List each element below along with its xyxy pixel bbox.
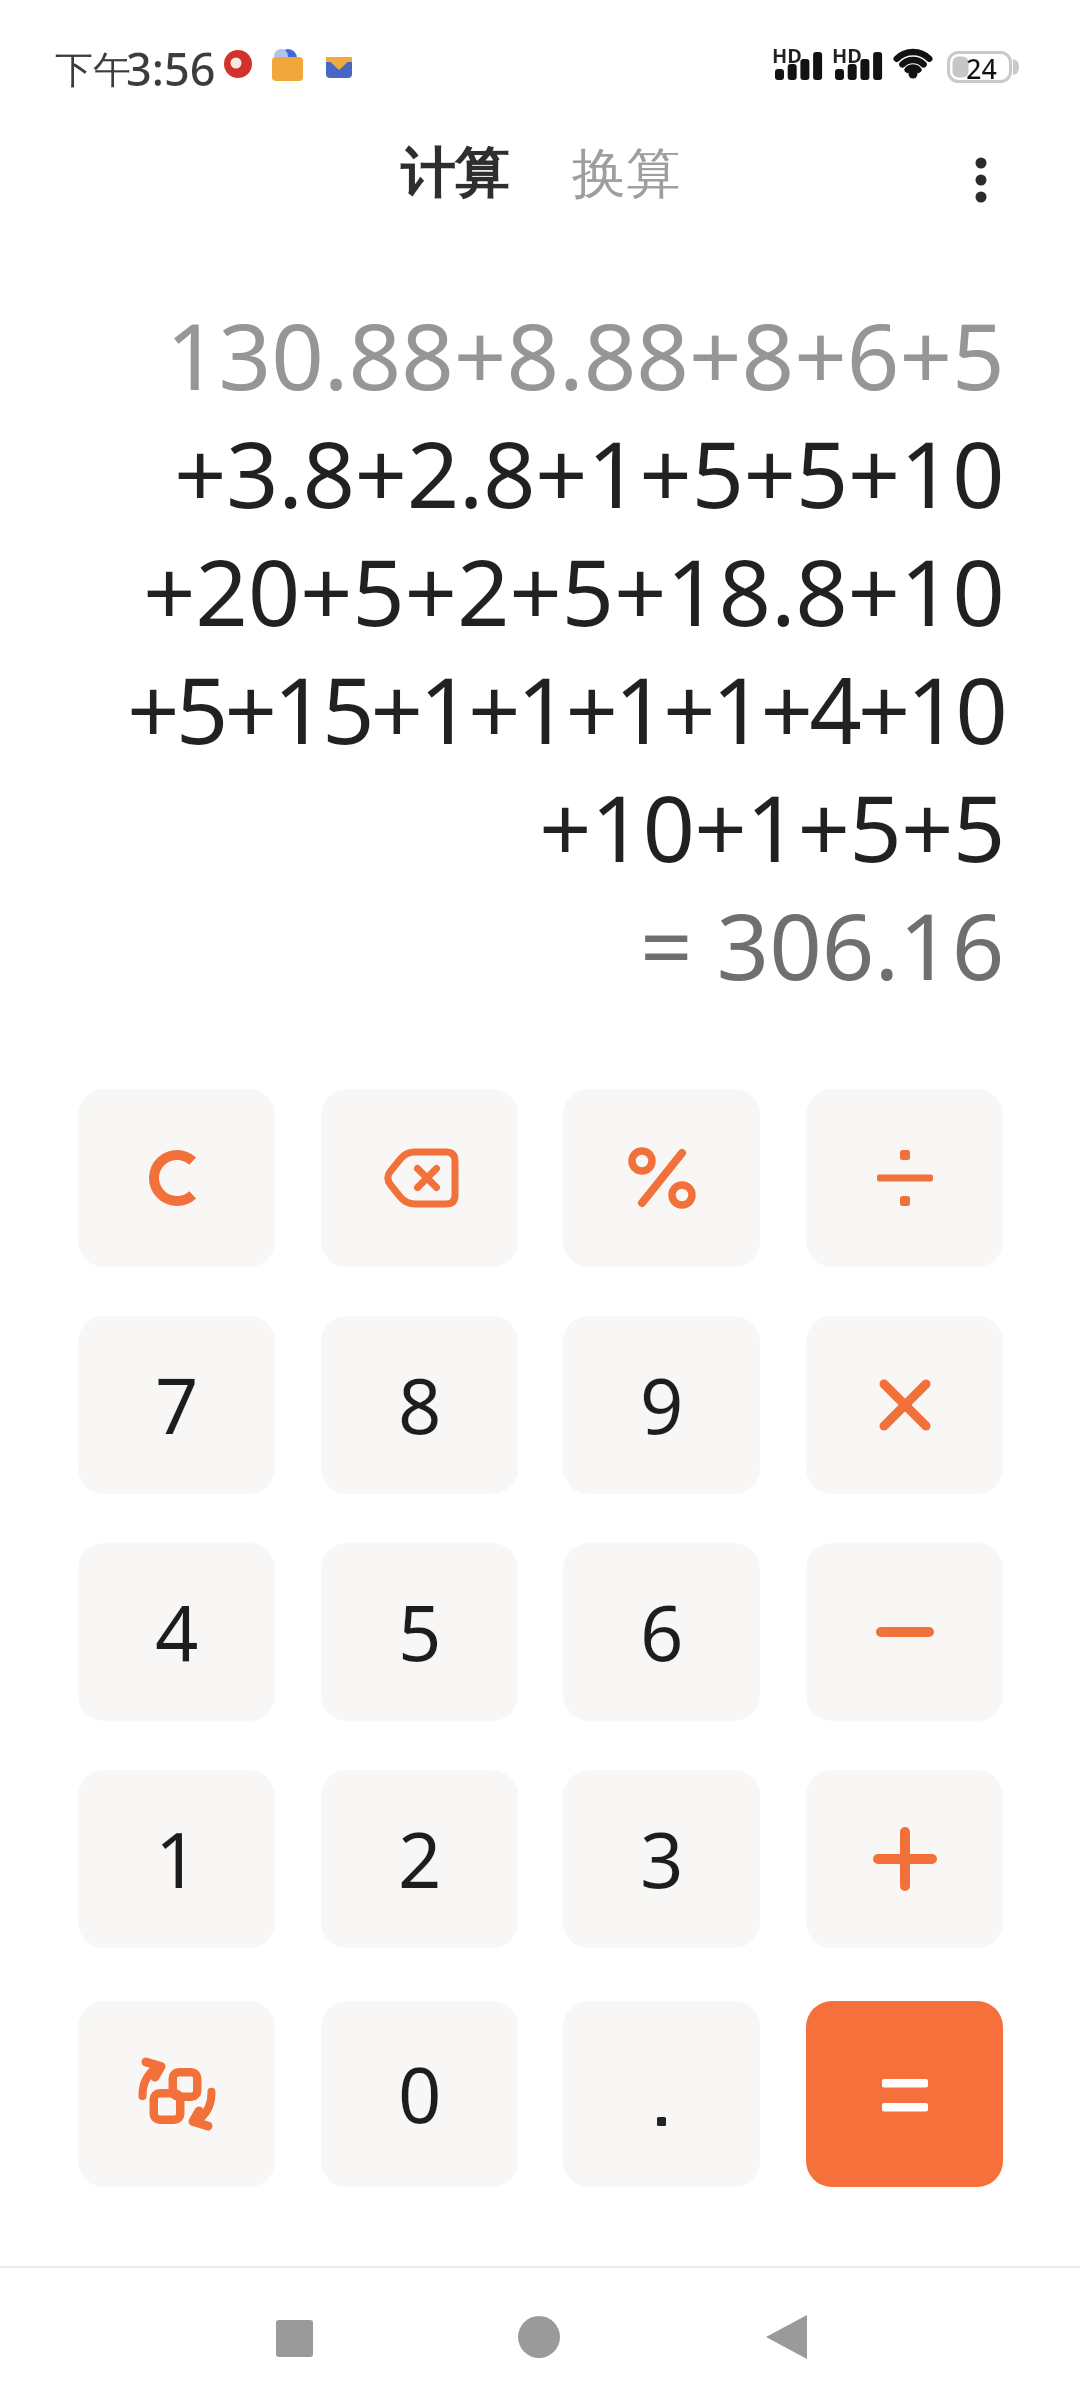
button[interactable] bbox=[563, 1089, 760, 1267]
staticText: 9 bbox=[640, 1353, 684, 1457]
staticText: HD bbox=[832, 42, 862, 69]
staticText: = 306.16 bbox=[640, 882, 1005, 1007]
button[interactable] bbox=[955, 140, 1007, 220]
staticText: 2 bbox=[398, 1807, 442, 1911]
staticText: 换算 bbox=[572, 140, 680, 208]
button[interactable]: 2 bbox=[321, 1770, 518, 1948]
staticText: +20+5+2+5+18.8+10 bbox=[143, 528, 1005, 653]
button[interactable] bbox=[806, 1089, 1003, 1267]
staticText: 1 bbox=[155, 1807, 199, 1911]
staticText: 130.88+8.88+8+6+5 bbox=[166, 292, 1005, 417]
button[interactable] bbox=[563, 2001, 760, 2187]
staticText: 7 bbox=[155, 1353, 199, 1457]
button[interactable]: 4 bbox=[78, 1543, 275, 1721]
staticText: 5 bbox=[398, 1580, 442, 1684]
staticText: 下午 bbox=[55, 46, 131, 94]
button[interactable]: 换算 bbox=[560, 140, 692, 208]
staticText: 4 bbox=[155, 1580, 199, 1684]
button[interactable] bbox=[490, 2290, 590, 2390]
staticText: 计算 bbox=[400, 140, 508, 208]
button[interactable]: 9 bbox=[563, 1316, 760, 1494]
button[interactable]: 1 bbox=[78, 1770, 275, 1948]
button[interactable]: 0 bbox=[321, 2001, 518, 2187]
staticText: 3 bbox=[640, 1807, 684, 1911]
button[interactable] bbox=[806, 1316, 1003, 1494]
button[interactable]: 计算 bbox=[388, 140, 520, 208]
button[interactable] bbox=[78, 1089, 275, 1267]
button[interactable] bbox=[321, 1089, 518, 1267]
staticText: 8 bbox=[398, 1353, 442, 1457]
button[interactable]: 3 bbox=[563, 1770, 760, 1948]
staticText: 0 bbox=[398, 2042, 442, 2146]
staticText: 6 bbox=[640, 1580, 684, 1684]
staticText: +3.8+2.8+1+5+5+10 bbox=[174, 410, 1005, 535]
button[interactable]: 6 bbox=[563, 1543, 760, 1721]
staticText: 24 bbox=[966, 50, 997, 87]
button[interactable] bbox=[806, 2001, 1003, 2187]
staticText: +10+1+5+5 bbox=[539, 764, 1005, 889]
button[interactable]: 7 bbox=[78, 1316, 275, 1494]
button[interactable] bbox=[806, 1770, 1003, 1948]
button[interactable] bbox=[246, 2290, 346, 2390]
button[interactable] bbox=[806, 1543, 1003, 1721]
staticText: 3:56 bbox=[126, 38, 216, 99]
button[interactable] bbox=[78, 2001, 275, 2187]
button[interactable]: 5 bbox=[321, 1543, 518, 1721]
staticText: HD bbox=[772, 42, 802, 69]
staticText: +5+15+1+1+1+1+4+10 bbox=[127, 646, 1005, 771]
button[interactable]: 8 bbox=[321, 1316, 518, 1494]
button[interactable] bbox=[740, 2290, 840, 2390]
